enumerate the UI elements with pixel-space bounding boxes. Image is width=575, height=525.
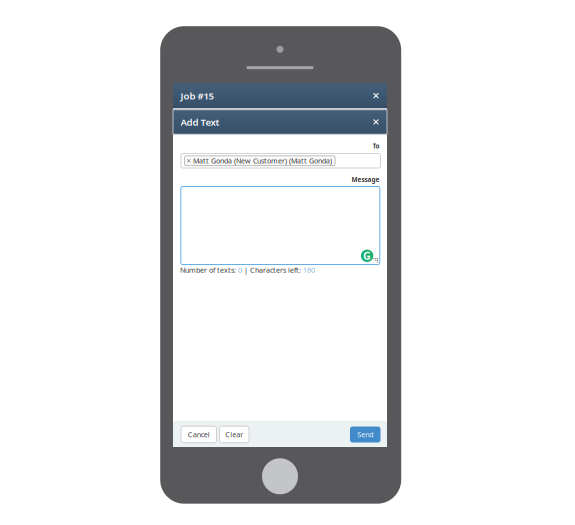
staticText: Message bbox=[351, 175, 379, 184]
staticText: To bbox=[372, 142, 379, 150]
staticText: G bbox=[363, 248, 371, 263]
button[interactable]: Message bbox=[181, 186, 380, 264]
staticText: Matt Gonda (New Customer) (Matt Gonda) bbox=[193, 156, 332, 165]
button[interactable]: Clear bbox=[219, 426, 249, 443]
button[interactable]: Cancel bbox=[181, 426, 216, 443]
staticText: 160 bbox=[303, 265, 315, 275]
button[interactable]: Send bbox=[350, 426, 380, 442]
staticText: Cancel bbox=[188, 430, 210, 439]
staticText: Job #15 bbox=[180, 89, 213, 102]
staticText: | Characters left: bbox=[242, 265, 303, 275]
button[interactable]: To: Matt Gonda (New Customer) (Matt Gond… bbox=[181, 153, 380, 168]
button[interactable]: Close Add Text bbox=[365, 110, 387, 134]
staticText: Add Text bbox=[180, 115, 219, 128]
staticText: Send bbox=[357, 430, 373, 439]
staticText: Clear bbox=[225, 430, 243, 439]
staticText: Number of texts: bbox=[180, 265, 238, 275]
staticText: 0 bbox=[238, 265, 242, 275]
button[interactable]: Close Job #15 bbox=[365, 83, 387, 108]
